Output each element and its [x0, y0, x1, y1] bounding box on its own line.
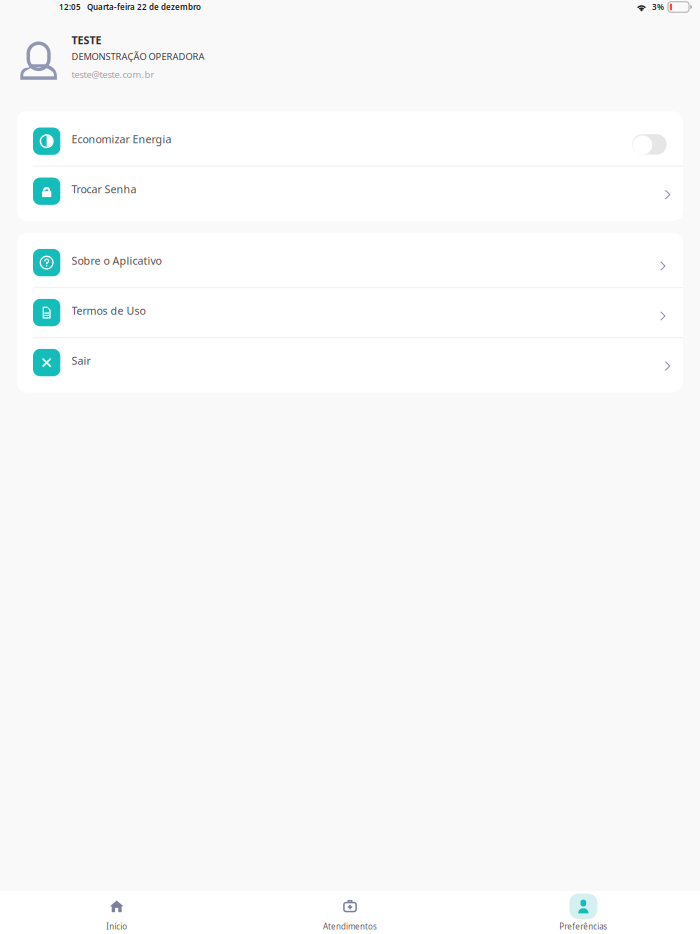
staticText: TESTE: [71, 33, 101, 47]
button[interactable]: Termos de Uso: [17, 288, 683, 337]
button[interactable]: Trocar Senha: [17, 167, 683, 216]
staticText: teste@teste.com.br: [71, 68, 154, 80]
button[interactable]: Economizar Energia: [17, 117, 683, 166]
staticText: Atendimentos: [323, 921, 377, 932]
button[interactable]: Sair: [17, 338, 683, 387]
button[interactable]: Sobre o Aplicativo: [17, 238, 683, 287]
staticText: Preferências: [559, 921, 607, 932]
staticText: Trocar Senha: [71, 182, 136, 196]
staticText: Quarta-feira 22 de dezembro: [87, 2, 201, 12]
button[interactable]: Preferências: [467, 891, 700, 934]
staticText: Termos de Uso: [71, 303, 145, 318]
button[interactable]: Início: [0, 891, 233, 934]
staticText: DEMONSTRAÇÃO OPERADORA: [71, 50, 204, 63]
staticText: Economizar Energia: [71, 132, 171, 146]
staticText: Sobre o Aplicativo: [71, 253, 161, 268]
staticText: Início: [106, 921, 127, 932]
staticText: 12:05: [59, 2, 81, 12]
button[interactable]: Atendimentos: [233, 891, 467, 934]
staticText: 3%: [652, 2, 664, 12]
staticText: Sair: [71, 353, 90, 368]
